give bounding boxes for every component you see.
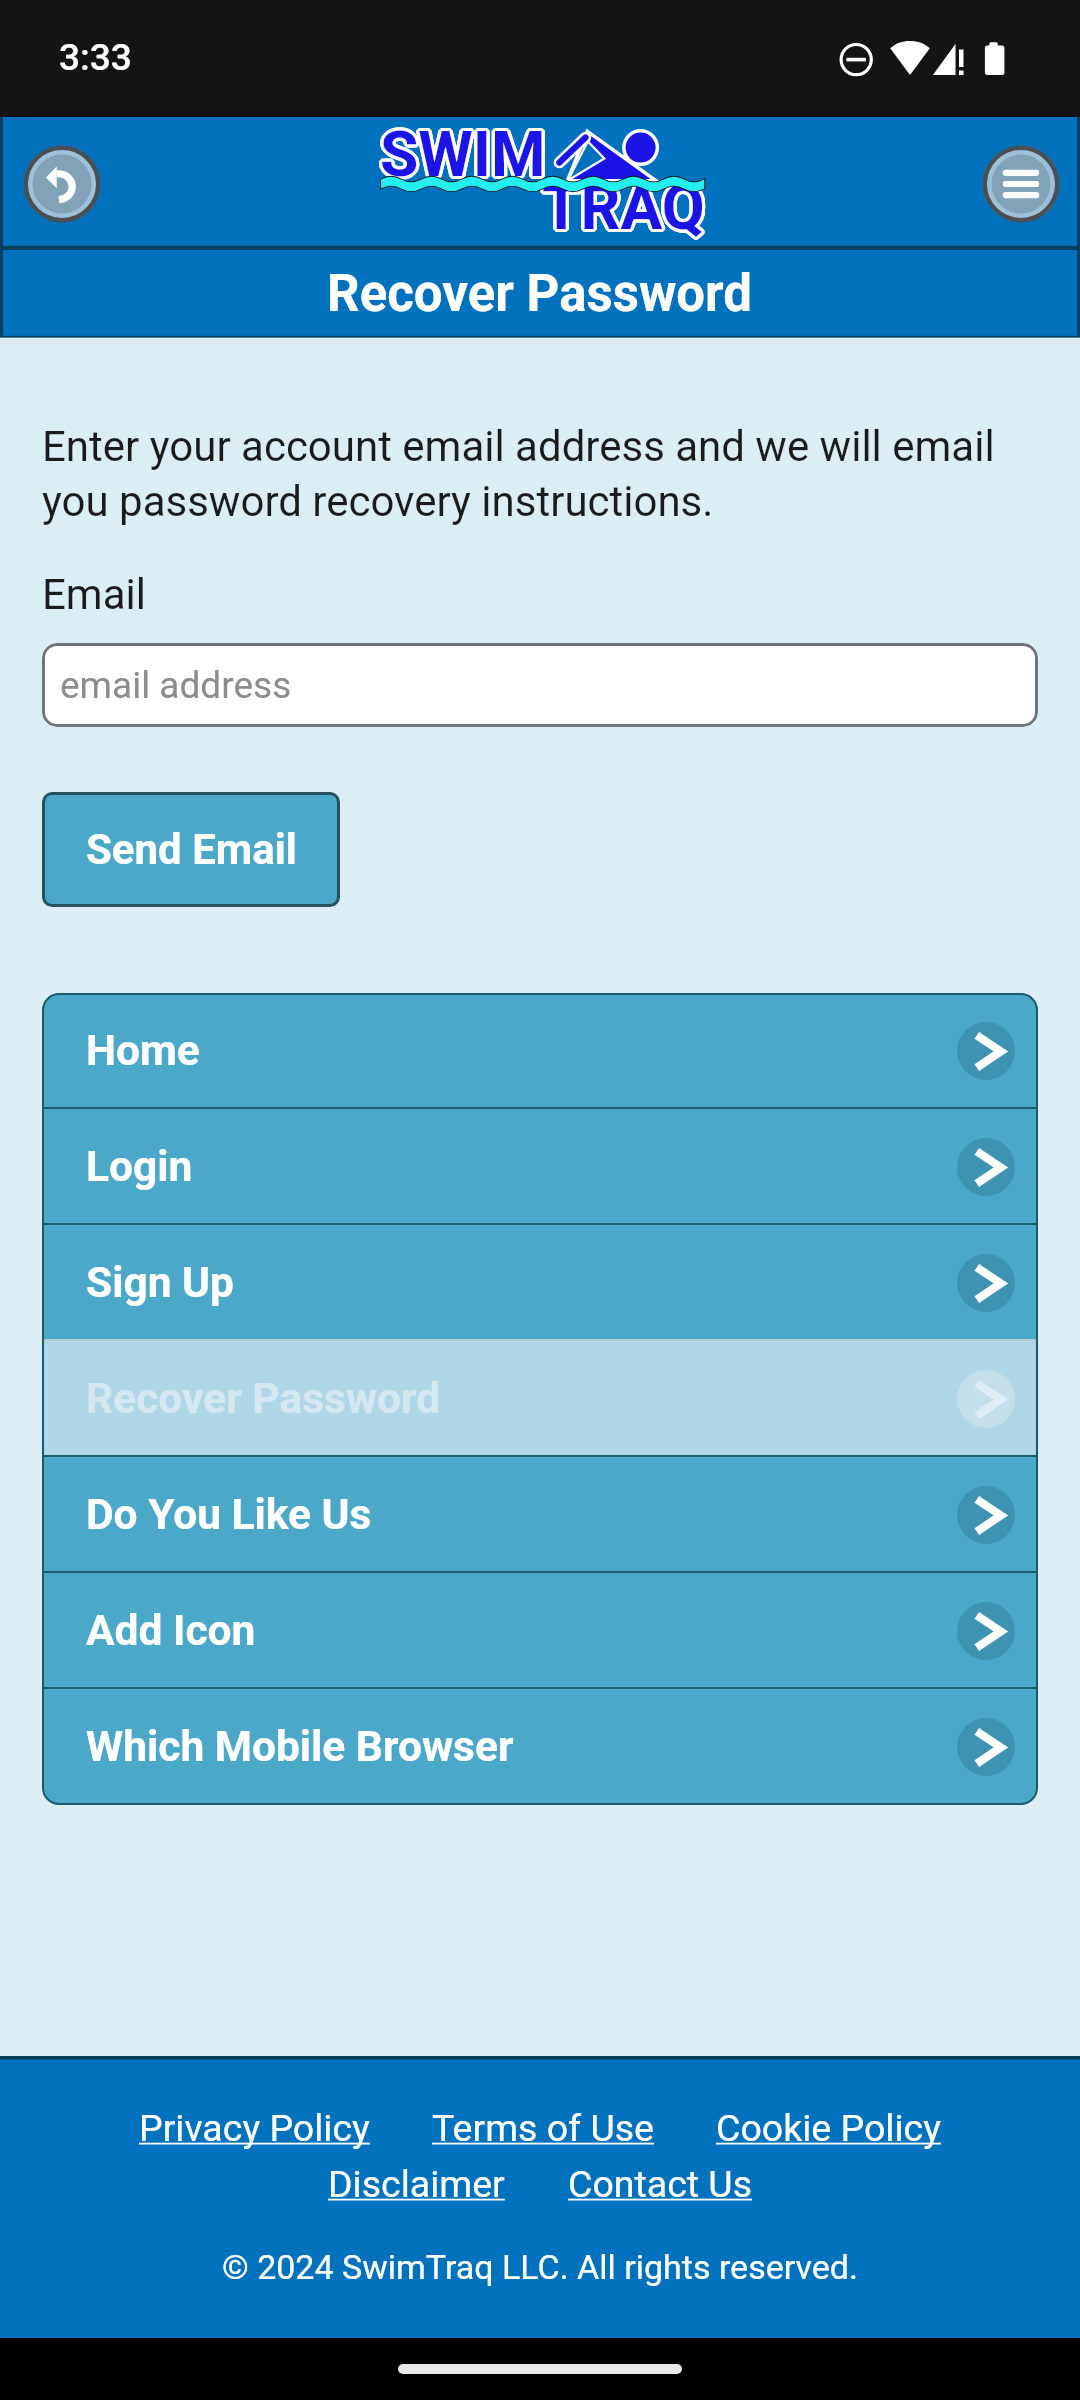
button[interactable]: Sign Up [42,1225,1038,1341]
staticText: Which Mobile Browser [86,1722,514,1772]
button[interactable]: Send Email [42,792,340,907]
staticText: Email [42,570,146,619]
staticText: email address [60,664,292,707]
button[interactable]: Back [18,140,106,228]
button[interactable]: Terms of Use [432,2106,654,2150]
button[interactable]: Recover Password [42,1341,1038,1457]
staticText: Privacy Policy [139,2106,370,2150]
staticText: Cookie Policy [716,2106,941,2150]
staticText: Login [86,1142,193,1192]
button[interactable]: email address [42,643,1038,727]
button[interactable]: Home [42,993,1038,1109]
staticText: Terms of Use [432,2106,654,2150]
button[interactable]: Do You Like Us [42,1457,1038,1573]
button[interactable]: Disclaimer [328,2162,505,2206]
staticText: Enter your account email address and we … [42,422,995,526]
staticText: Send Email [86,825,297,874]
staticText: © 2024 SwimTraq LLC. All rights reserved… [222,2247,858,2287]
staticText: Disclaimer [328,2162,505,2206]
staticText: 3:33 [59,36,132,79]
button[interactable]: Login [42,1109,1038,1225]
button[interactable]: Cookie Policy [716,2106,941,2150]
button[interactable]: Which Mobile Browser [42,1689,1038,1805]
button[interactable]: Add Icon [42,1573,1038,1689]
staticText: Add Icon [86,1606,256,1656]
button[interactable]: Menu [977,140,1065,228]
button[interactable]: Privacy Policy [139,2106,370,2150]
staticText: Do You Like Us [86,1490,372,1540]
staticText: Recover Password [327,264,753,324]
staticText: Recover Password [86,1374,441,1424]
staticText: Sign Up [86,1258,235,1308]
staticText: Home [86,1026,200,1076]
staticText: Contact Us [568,2162,753,2206]
button[interactable]: Contact Us [568,2162,753,2206]
